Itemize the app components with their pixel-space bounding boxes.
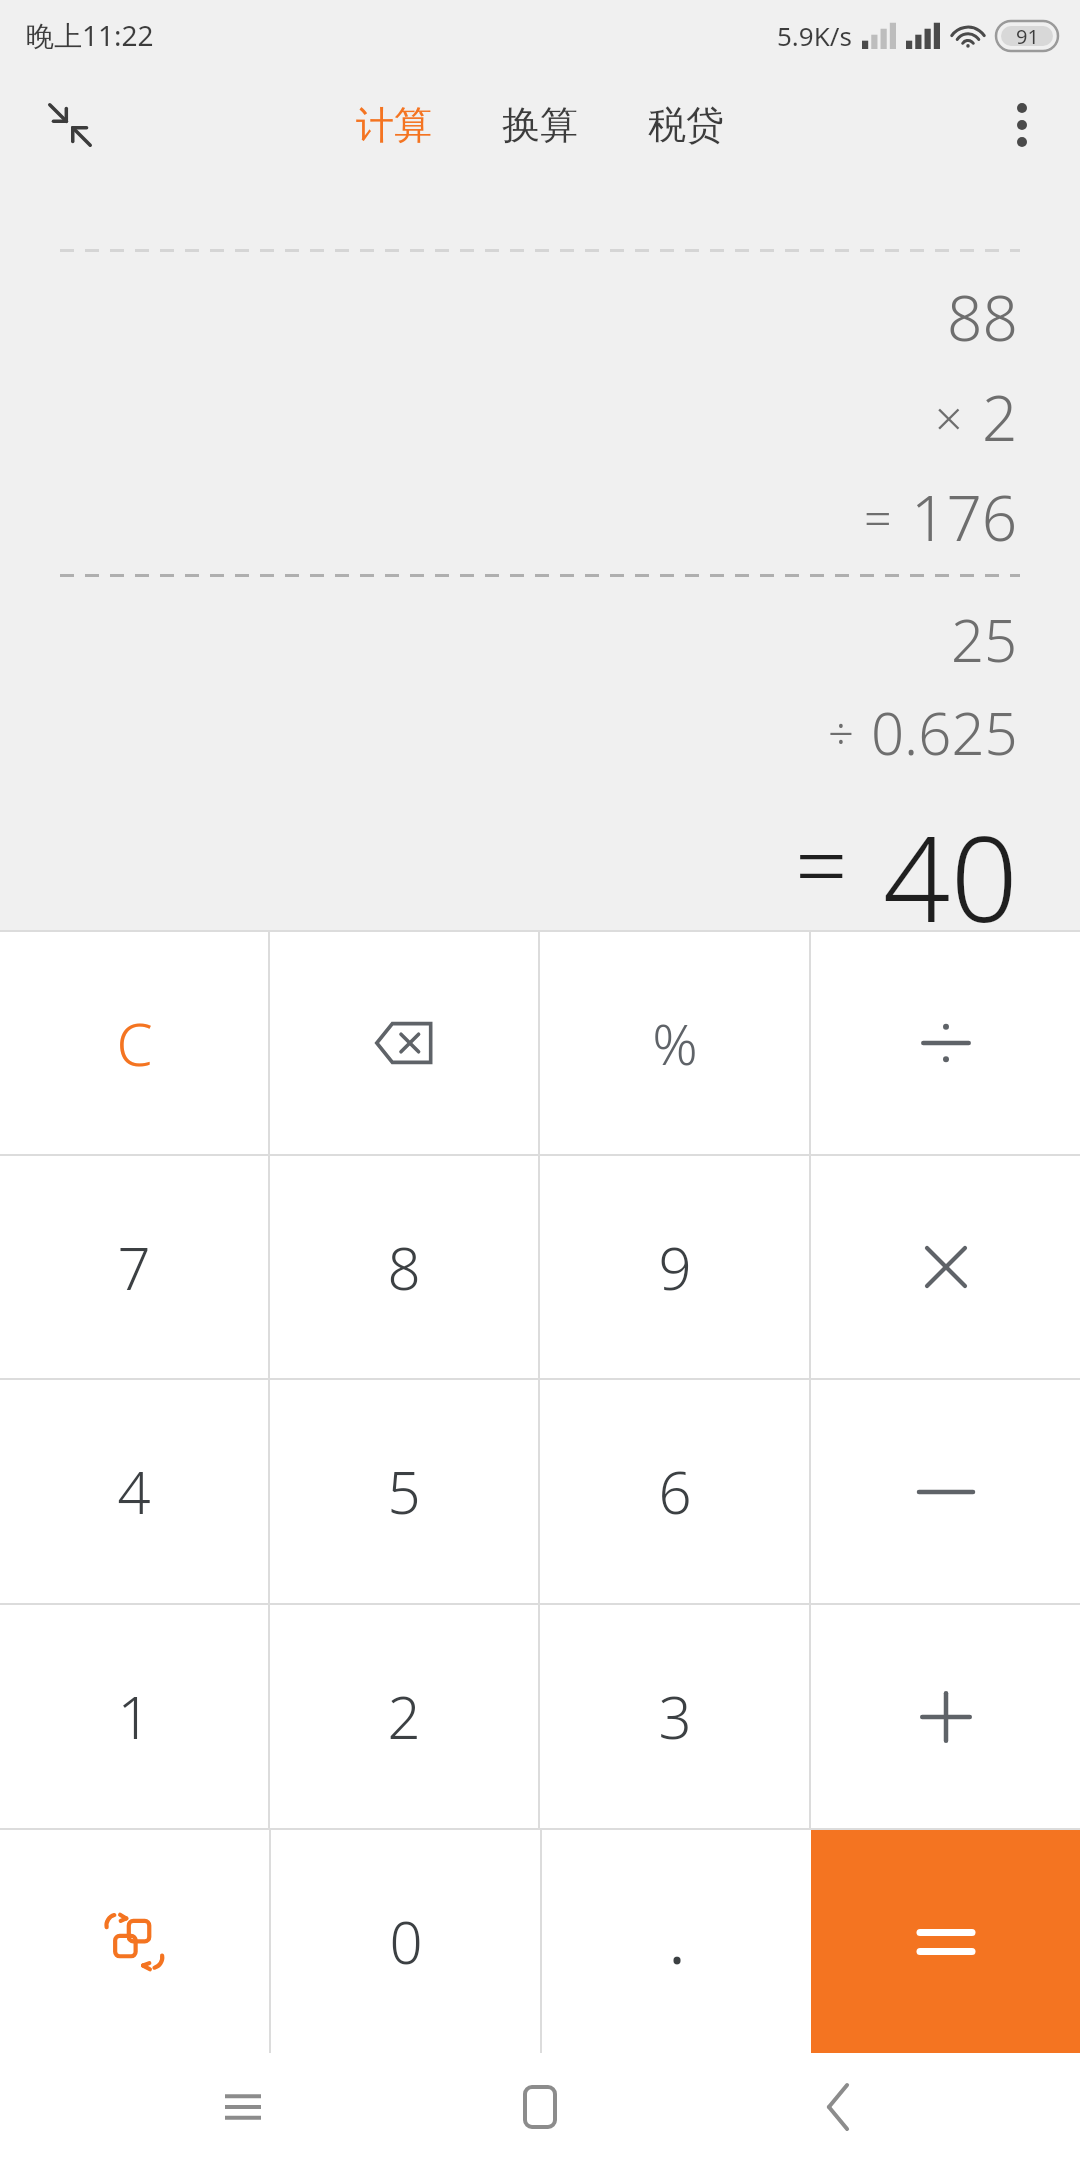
staticText: C <box>116 1004 153 1083</box>
button[interactable]: Backspace <box>270 932 538 1154</box>
button[interactable]: 1 <box>0 1605 268 1828</box>
button[interactable]: Plus <box>811 1605 1080 1828</box>
button[interactable]: C <box>0 932 268 1154</box>
staticText: = <box>864 484 892 550</box>
button[interactable]: 2 <box>270 1605 538 1828</box>
staticText: 0 <box>389 1902 423 1981</box>
button[interactable]: 计算 <box>346 91 442 159</box>
staticText: 计算 <box>356 101 432 149</box>
staticText: 91 <box>1016 23 1039 50</box>
staticText: 0.625 <box>871 693 1018 772</box>
staticText: 2 <box>387 1677 421 1756</box>
staticText: 4 <box>117 1452 151 1531</box>
button[interactable]: 8 <box>270 1156 538 1378</box>
staticText: 税贷 <box>648 101 724 149</box>
button[interactable]: 0 <box>271 1830 540 2053</box>
staticText: 5.9K/s <box>777 18 852 53</box>
staticText: 换算 <box>502 101 578 149</box>
staticText: 晚上11:22 <box>26 16 154 54</box>
staticText: × <box>935 384 963 450</box>
staticText: 9 <box>658 1228 692 1307</box>
button[interactable]: Collapse <box>34 89 106 161</box>
button[interactable]: More options <box>986 89 1058 161</box>
button[interactable]: 9 <box>540 1156 809 1378</box>
staticText: . <box>669 1902 685 1981</box>
button[interactable]: 换算 <box>492 91 588 159</box>
staticText: 3 <box>658 1677 692 1756</box>
button[interactable]: Divide <box>811 932 1080 1154</box>
button[interactable]: 4 <box>0 1380 268 1603</box>
staticText: 7 <box>117 1228 151 1307</box>
button[interactable]: Minus <box>811 1380 1080 1603</box>
staticText: 40 <box>883 796 1018 930</box>
button[interactable]: 5 <box>270 1380 538 1603</box>
staticText: 5 <box>387 1452 421 1531</box>
staticText: 88 <box>947 275 1018 359</box>
button[interactable]: Back <box>783 2053 893 2160</box>
button[interactable]: 税贷 <box>638 91 734 159</box>
button[interactable]: 3 <box>540 1605 809 1828</box>
staticText: 8 <box>387 1228 421 1307</box>
button[interactable]: % <box>540 932 809 1154</box>
staticText: % <box>652 1005 698 1081</box>
button[interactable]: 7 <box>0 1156 268 1378</box>
button[interactable]: Multiply <box>811 1156 1080 1378</box>
staticText: 6 <box>658 1452 692 1531</box>
staticText: ÷ <box>828 702 854 764</box>
staticText: 176 <box>911 475 1018 559</box>
staticText: 1 <box>117 1677 151 1756</box>
button[interactable]: Equals <box>811 1830 1080 2053</box>
staticText: 2 <box>982 375 1018 459</box>
button[interactable]: 6 <box>540 1380 809 1603</box>
staticText: = <box>795 801 848 926</box>
button[interactable]: Swap <box>0 1830 269 2053</box>
staticText: 25 <box>951 600 1018 679</box>
button[interactable]: . <box>542 1830 811 2053</box>
button[interactable]: Menu <box>188 2053 298 2160</box>
button[interactable]: Home <box>485 2053 595 2160</box>
